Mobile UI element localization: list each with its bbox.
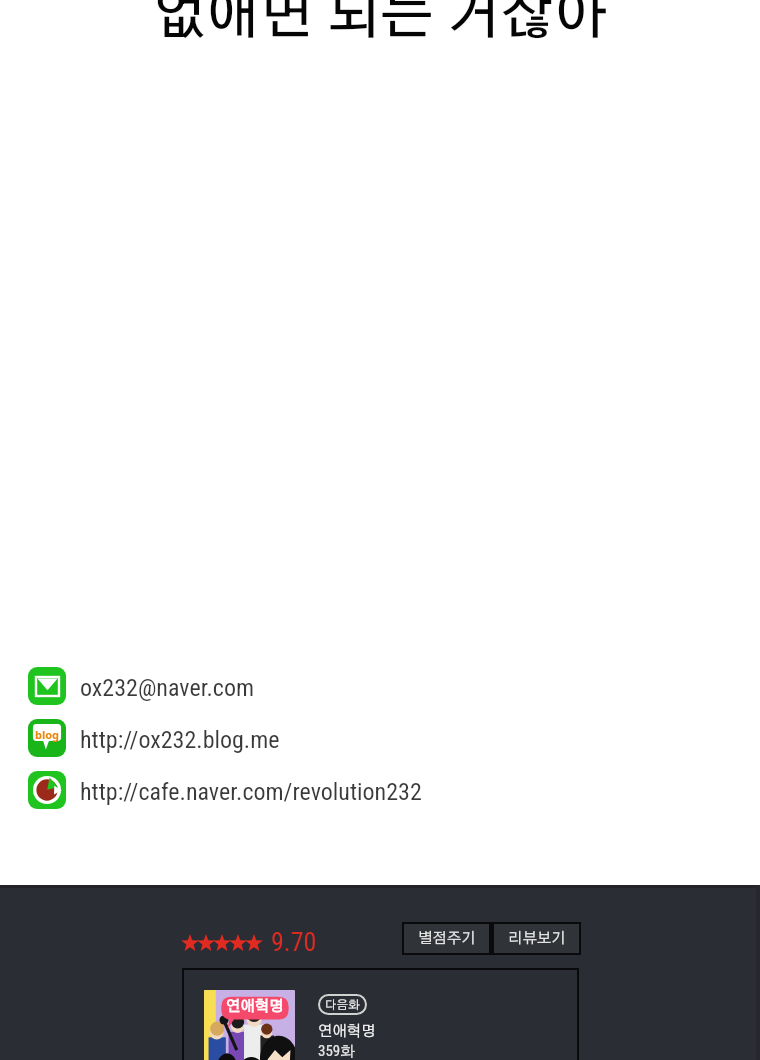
button[interactable]: 다음화 (318, 994, 367, 1015)
staticText: http://ox232.blog.me (80, 726, 280, 754)
staticText: http://cafe.naver.com/revolution232 (80, 778, 422, 806)
staticText: 다음화 (325, 999, 360, 1011)
button[interactable]: 리뷰보기 (492, 922, 581, 955)
other: Email (28, 667, 66, 705)
staticText: 별점주기 (418, 931, 476, 946)
button[interactable]: Email (28, 667, 255, 705)
button[interactable]: Blog (28, 719, 280, 757)
staticText: 연애혁명 (318, 1024, 376, 1039)
staticText: 연애혁명 (226, 999, 284, 1014)
staticText: 359화 (318, 1042, 356, 1060)
staticText: ox232@naver.com (80, 674, 255, 702)
other: Cafe (28, 771, 66, 809)
button[interactable]: 별점주기 (402, 922, 491, 955)
button[interactable]: 연애혁명 (182, 968, 579, 1060)
button[interactable]: Cafe (28, 771, 422, 809)
staticText: blog (35, 727, 60, 742)
other: Blog (28, 719, 66, 757)
button[interactable]: Rating 9.70 out of 10 (182, 926, 317, 958)
staticText: 9.70 (271, 927, 317, 957)
staticText: 리뷰보기 (508, 931, 566, 946)
other: Rating 9.70 out of 10 (182, 934, 262, 952)
staticText: 없애면 되는 거잖아 (0, 0, 760, 44)
